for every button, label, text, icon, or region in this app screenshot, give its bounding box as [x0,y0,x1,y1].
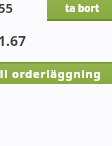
staticText: ta bort [65,1,100,15]
staticText: ll orderläggning [0,66,102,81]
staticText: 55 [0,0,13,17]
button[interactable]: ta bort [47,0,112,20]
button[interactable]: ll orderläggning [0,62,112,84]
staticText: 1.67 [0,31,26,50]
